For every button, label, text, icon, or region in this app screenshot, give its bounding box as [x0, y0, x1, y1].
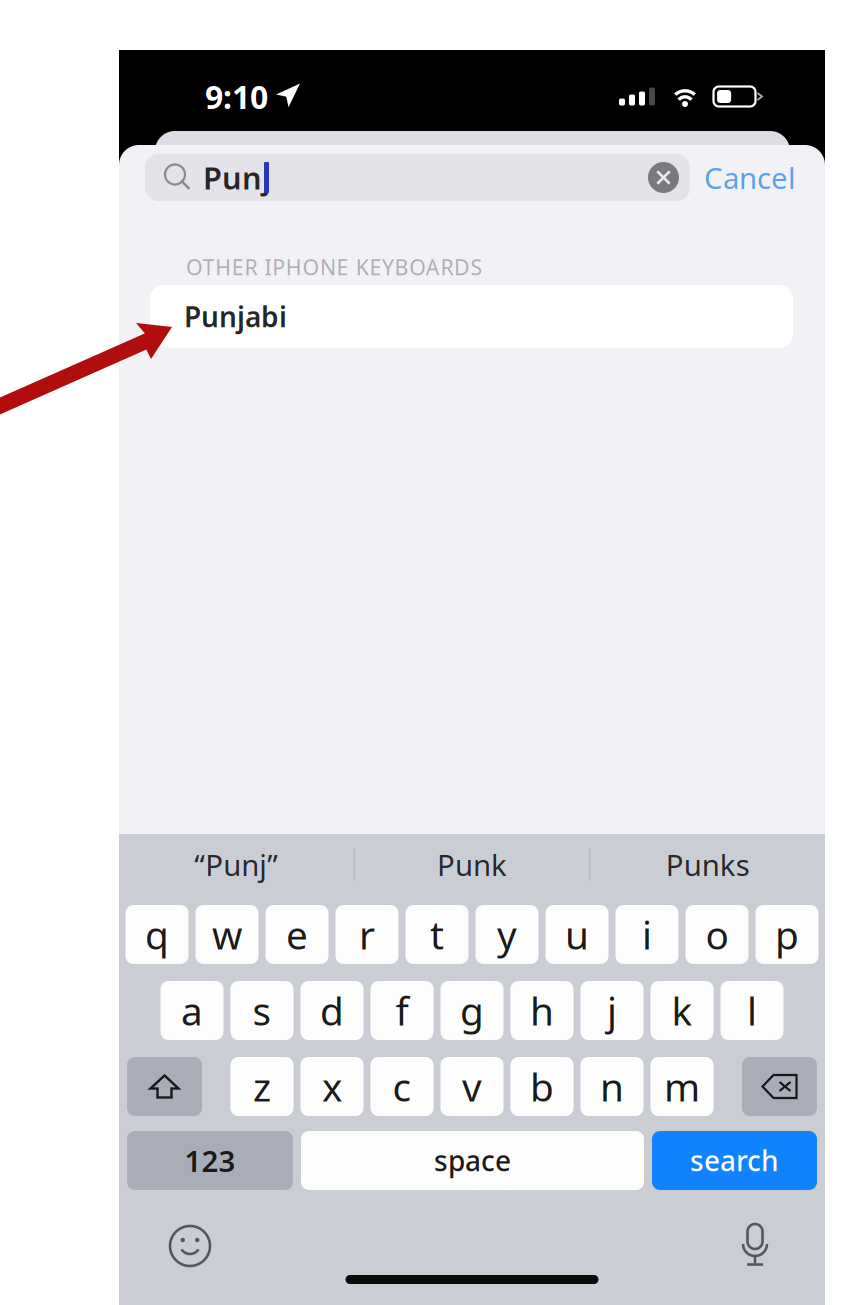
button[interactable]: Punjabi — [150, 285, 793, 348]
staticText: a — [181, 985, 203, 1036]
button[interactable]: k — [650, 981, 713, 1040]
button[interactable]: Dictation — [740, 1224, 770, 1268]
button[interactable]: z — [230, 1057, 293, 1116]
staticText: l — [747, 985, 757, 1036]
staticText: n — [600, 1061, 624, 1112]
staticText: o — [705, 909, 728, 960]
staticText: z — [253, 1061, 271, 1112]
button[interactable]: 123 — [127, 1131, 293, 1190]
button[interactable]: l — [720, 981, 783, 1040]
staticText: g — [460, 985, 484, 1036]
button[interactable]: b — [510, 1057, 573, 1116]
button[interactable]: space — [301, 1131, 644, 1190]
staticText: i — [642, 909, 652, 960]
button[interactable]: o — [685, 905, 748, 964]
button[interactable]: Delete — [742, 1057, 817, 1116]
button[interactable]: f — [370, 981, 433, 1040]
staticText: OTHER IPHONE KEYBOARDS — [186, 253, 483, 281]
staticText: p — [775, 909, 799, 960]
staticText: 9:10 — [205, 75, 268, 118]
button[interactable]: s — [230, 981, 293, 1040]
staticText: y — [497, 909, 517, 960]
staticText: d — [320, 985, 344, 1036]
button[interactable]: Clear search text — [648, 162, 679, 193]
button[interactable]: r — [335, 905, 398, 964]
staticText: t — [430, 909, 444, 960]
button[interactable]: p — [755, 905, 818, 964]
staticText: j — [607, 985, 617, 1036]
staticText: w — [212, 909, 242, 960]
staticText: space — [434, 1142, 511, 1179]
button[interactable]: search — [652, 1131, 817, 1190]
staticText: c — [392, 1061, 411, 1112]
button[interactable]: a — [160, 981, 223, 1040]
button[interactable]: q — [125, 905, 188, 964]
button[interactable]: e — [265, 905, 328, 964]
button[interactable]: Cancel — [690, 154, 810, 201]
button[interactable]: n — [580, 1057, 643, 1116]
staticText: h — [530, 985, 554, 1036]
staticText: r — [359, 909, 375, 960]
button[interactable]: v — [440, 1057, 503, 1116]
button[interactable]: i — [615, 905, 678, 964]
staticText: search — [690, 1142, 779, 1179]
staticText: x — [322, 1061, 342, 1112]
staticText: “Punj” — [194, 845, 278, 884]
button[interactable]: Punk — [355, 834, 589, 895]
staticText: u — [565, 909, 589, 960]
button[interactable]: c — [370, 1057, 433, 1116]
button[interactable]: t — [405, 905, 468, 964]
button[interactable]: u — [545, 905, 608, 964]
staticText: k — [671, 985, 692, 1036]
staticText: 123 — [184, 1141, 235, 1180]
button[interactable]: Punks — [590, 834, 825, 895]
staticText: f — [395, 985, 408, 1036]
staticText: e — [286, 909, 308, 960]
staticText: s — [252, 985, 271, 1036]
button[interactable]: m — [650, 1057, 713, 1116]
button[interactable]: h — [510, 981, 573, 1040]
button[interactable]: “Punj” — [119, 834, 354, 895]
button[interactable]: d — [300, 981, 363, 1040]
staticText: Punjabi — [184, 298, 287, 335]
staticText: v — [462, 1061, 482, 1112]
staticText: Punk — [437, 845, 507, 884]
staticText: Cancel — [704, 158, 796, 197]
button[interactable]: y — [475, 905, 538, 964]
button[interactable]: w — [195, 905, 258, 964]
staticText: b — [530, 1061, 554, 1112]
staticText: q — [145, 909, 169, 960]
button[interactable]: Emoji keyboard — [169, 1225, 211, 1267]
staticText: m — [664, 1061, 700, 1112]
button[interactable]: Shift — [127, 1057, 202, 1116]
button[interactable]: x — [300, 1057, 363, 1116]
staticText: Punks — [666, 845, 750, 884]
button[interactable]: j — [580, 981, 643, 1040]
button[interactable]: g — [440, 981, 503, 1040]
staticText: Punj — [203, 157, 271, 198]
